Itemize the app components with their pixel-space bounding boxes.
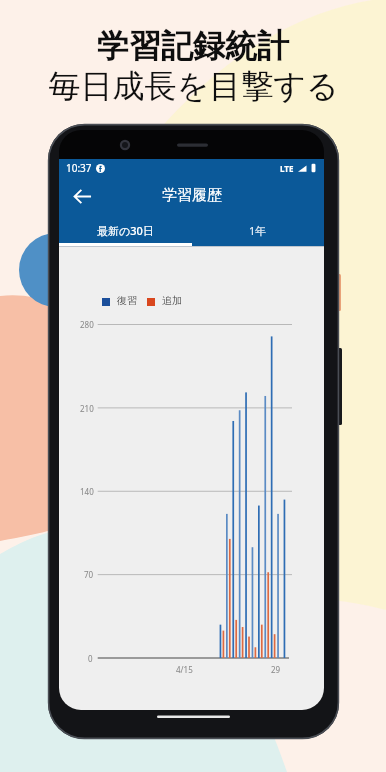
button[interactable]: 最新の30日: [59, 214, 191, 246]
staticText: 1年: [249, 223, 267, 238]
staticText: 29: [271, 664, 281, 675]
staticText: 追加: [162, 294, 182, 307]
staticText: 0: [88, 653, 93, 664]
staticText: 70: [84, 569, 94, 580]
staticText: 学習履歴: [162, 186, 222, 205]
staticText: 最新の30日: [97, 223, 154, 238]
button[interactable]: 1年: [191, 214, 324, 246]
staticText: 4/15: [176, 664, 193, 675]
staticText: 210: [80, 403, 94, 414]
staticText: 140: [80, 486, 94, 497]
staticText: 学習記録統計: [97, 26, 289, 66]
staticText: 280: [80, 319, 94, 330]
staticText: 10:37: [66, 161, 92, 175]
staticText: 毎日成長を目撃する: [48, 66, 339, 106]
staticText: 復習: [117, 294, 137, 307]
staticText: LTE: [280, 163, 294, 174]
button[interactable]: Back: [64, 178, 100, 214]
